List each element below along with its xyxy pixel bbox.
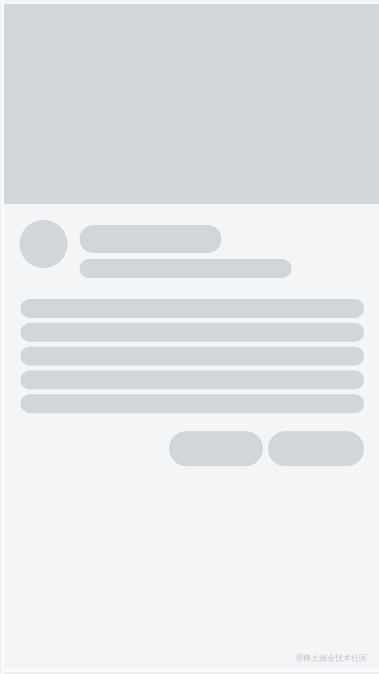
button[interactable]: Primary action [169,431,263,466]
button[interactable]: Author placeholder [4,204,379,278]
button[interactable]: Secondary action [268,431,364,466]
staticText: @稀土掘金技术社区 [296,652,367,663]
